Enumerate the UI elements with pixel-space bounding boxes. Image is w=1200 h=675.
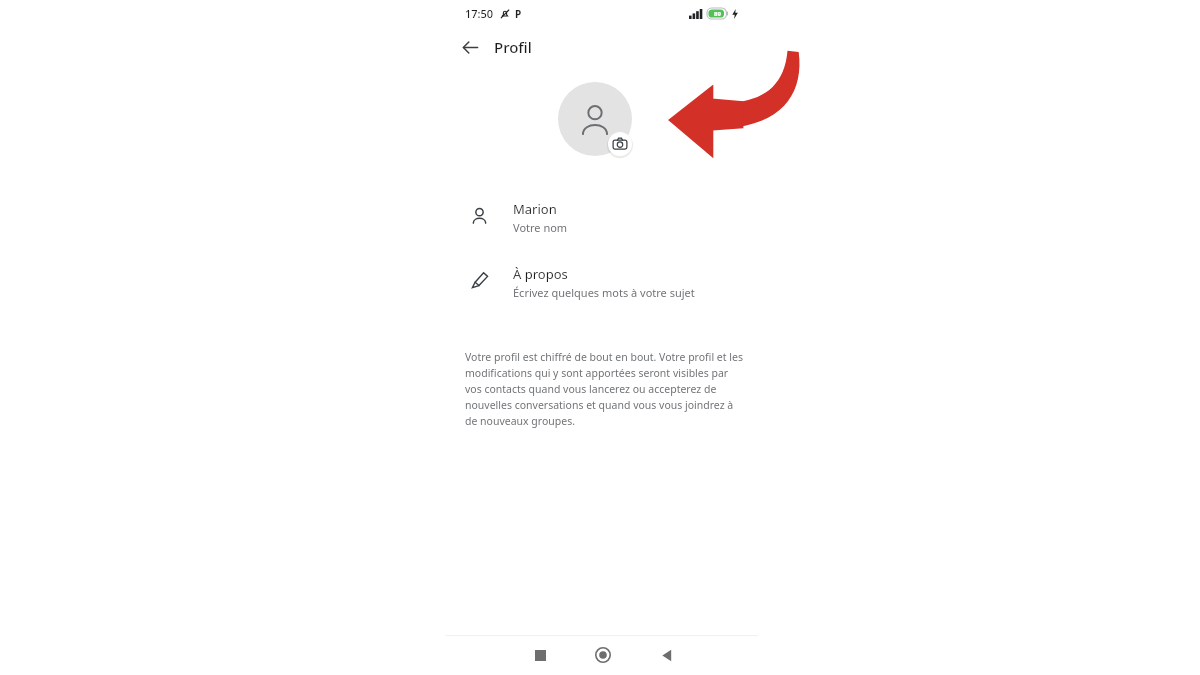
staticText: À propos bbox=[513, 265, 568, 283]
button[interactable]: Home bbox=[586, 638, 620, 672]
staticText: Votre profil est chiffré de bout en bout… bbox=[465, 350, 746, 428]
button[interactable]: Back bbox=[649, 638, 683, 672]
button[interactable]: Marion bbox=[445, 196, 758, 239]
staticText: P bbox=[515, 7, 522, 21]
button[interactable]: Change profile photo bbox=[558, 82, 646, 170]
button[interactable]: Recent apps bbox=[523, 638, 557, 672]
staticText: 17:50 bbox=[465, 6, 494, 21]
staticText: Écrivez quelques mots à votre sujet bbox=[513, 285, 695, 300]
staticText: 89 bbox=[714, 10, 721, 18]
staticText: Marion bbox=[513, 200, 557, 218]
staticText: Profil bbox=[494, 37, 532, 57]
staticText: Votre nom bbox=[513, 220, 568, 235]
button[interactable]: Back bbox=[455, 32, 485, 62]
button[interactable]: À propos bbox=[445, 261, 758, 304]
